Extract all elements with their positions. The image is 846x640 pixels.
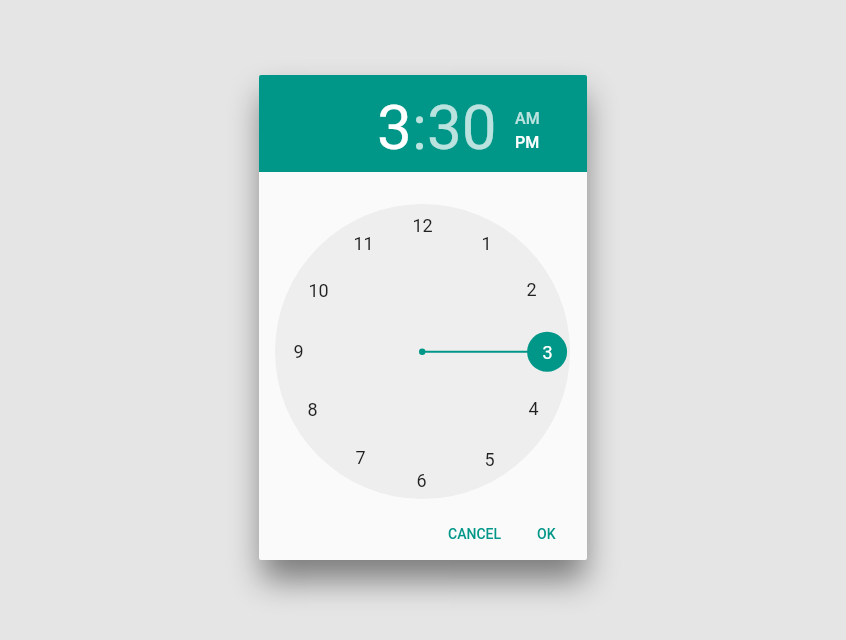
- button[interactable]: 1: [466, 230, 506, 256]
- staticText: 9: [293, 341, 304, 362]
- button[interactable]: 12: [402, 212, 442, 238]
- staticText: 4: [528, 398, 539, 419]
- button[interactable]: AM: [515, 109, 540, 128]
- button[interactable]: 3: [377, 91, 497, 164]
- staticText: 7: [355, 447, 366, 468]
- button[interactable]: 2: [511, 276, 551, 302]
- button[interactable]: 8: [292, 396, 332, 422]
- button[interactable]: PM: [515, 133, 540, 152]
- staticText: CANCEL: [448, 526, 502, 542]
- button[interactable]: 3: [527, 339, 567, 365]
- button[interactable]: 4: [513, 395, 553, 421]
- staticText: 2: [526, 279, 537, 300]
- button[interactable]: 10: [298, 277, 338, 303]
- staticText: 6: [416, 470, 427, 491]
- staticText: 5: [484, 449, 495, 470]
- button[interactable]: 9: [278, 338, 318, 364]
- staticText: 12: [412, 215, 433, 236]
- button[interactable]: Clock dial: [275, 204, 570, 499]
- staticText: 3: [542, 342, 553, 363]
- staticText: 3: [377, 91, 412, 164]
- button[interactable]: 5: [469, 446, 509, 472]
- button[interactable]: 11: [343, 230, 383, 256]
- staticText: AM: [515, 109, 540, 128]
- staticText: 1: [481, 233, 492, 254]
- staticText: 11: [353, 233, 374, 254]
- staticText: OK: [537, 526, 556, 542]
- button[interactable]: CANCEL: [433, 516, 517, 552]
- staticText: 8: [307, 399, 318, 420]
- button[interactable]: OK: [520, 516, 572, 552]
- staticText: 10: [308, 280, 329, 301]
- button[interactable]: 6: [401, 467, 441, 493]
- staticText: PM: [515, 133, 540, 152]
- staticText: :30: [412, 91, 497, 164]
- button[interactable]: 7: [340, 444, 380, 470]
